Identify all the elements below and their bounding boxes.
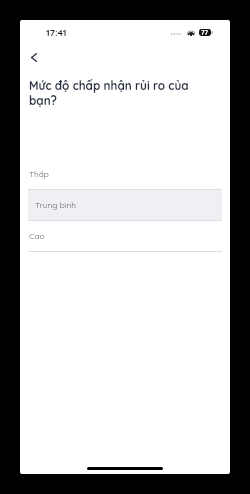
- button[interactable]: Cao: [28, 221, 222, 251]
- staticText: 17:41: [46, 26, 67, 38]
- button[interactable]: Back: [22, 45, 46, 69]
- button[interactable]: Thấp: [28, 159, 222, 189]
- staticText: Cao: [29, 231, 45, 241]
- staticText: Trung bình: [35, 200, 76, 210]
- button[interactable]: Trung bình: [28, 190, 222, 220]
- staticText: Thấp: [29, 169, 49, 179]
- staticText: Mức độ chấp nhận rủi ro của bạn?: [29, 78, 197, 108]
- staticText: 77: [201, 29, 209, 36]
